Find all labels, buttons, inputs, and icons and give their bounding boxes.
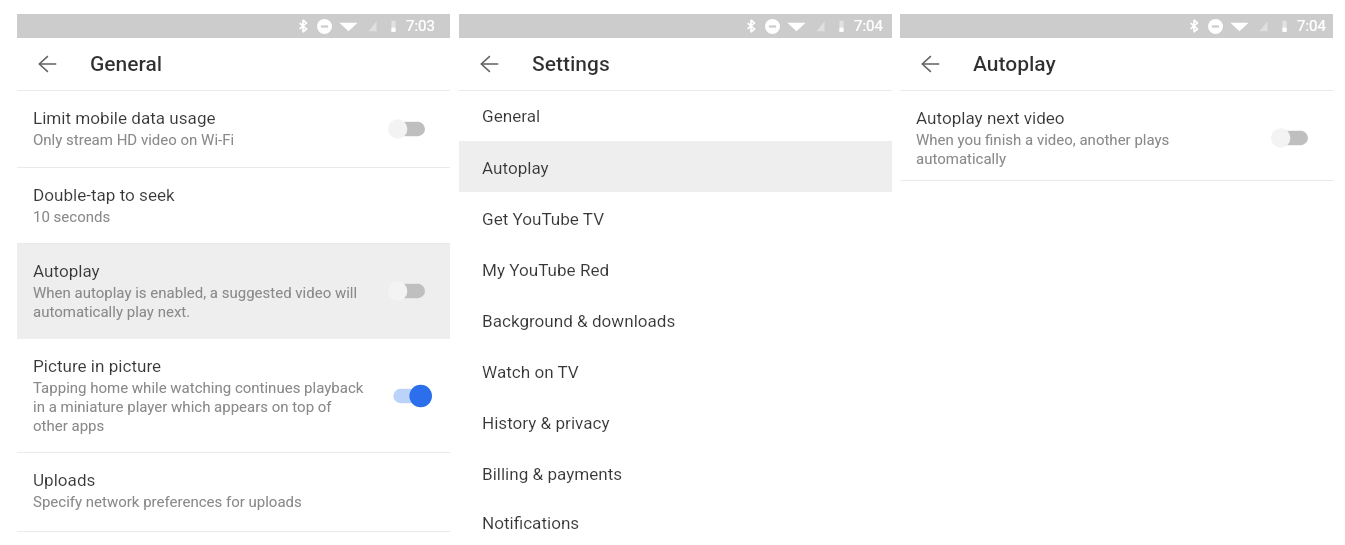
- staticText: Watch on TV: [482, 362, 579, 382]
- button[interactable]: Watch on TV: [459, 345, 892, 396]
- staticText: Autoplay next video: [916, 108, 1065, 128]
- button[interactable]: Billing & payments: [459, 447, 892, 498]
- staticText: Specify network preferences for uploads: [33, 493, 302, 511]
- staticText: Autoplay: [482, 158, 549, 178]
- button[interactable]: Back: [30, 47, 64, 81]
- button[interactable]: Back: [913, 47, 947, 81]
- staticText: Autoplay: [33, 261, 100, 281]
- button[interactable]: Background & downloads: [459, 294, 892, 345]
- staticText: 10 seconds: [33, 208, 111, 226]
- button[interactable]: Autoplay: [459, 141, 892, 192]
- staticText: Only stream HD video on Wi-Fi: [33, 131, 235, 149]
- button[interactable]: Get YouTube TV: [459, 192, 892, 243]
- button[interactable]: Picture in picture: [17, 339, 450, 452]
- staticText: Limit mobile data usage: [33, 108, 216, 128]
- staticText: When you finish a video, another plays a…: [916, 131, 1170, 168]
- button[interactable]: Toggle off: [380, 274, 432, 308]
- staticText: Get YouTube TV: [482, 209, 605, 229]
- staticText: Notifications: [482, 513, 580, 533]
- staticText: Billing & payments: [482, 464, 623, 484]
- staticText: General: [90, 52, 163, 77]
- button[interactable]: Notifications: [459, 498, 892, 545]
- button[interactable]: Limit mobile data usage: [17, 91, 450, 167]
- button[interactable]: Autoplay next video: [900, 91, 1333, 180]
- staticText: Autoplay: [973, 52, 1056, 77]
- staticText: Tapping home while watching continues pl…: [33, 379, 364, 435]
- staticText: My YouTube Red: [482, 260, 610, 280]
- staticText: 7:03: [406, 17, 435, 35]
- staticText: Background & downloads: [482, 311, 676, 331]
- button[interactable]: Uploads: [17, 453, 450, 531]
- staticText: Settings: [532, 52, 610, 77]
- button[interactable]: My YouTube Red: [459, 243, 892, 294]
- button[interactable]: Autoplay: [17, 244, 450, 339]
- button[interactable]: Toggle off: [1263, 121, 1315, 155]
- button[interactable]: Back: [472, 47, 506, 81]
- staticText: Double-tap to seek: [33, 185, 175, 205]
- button[interactable]: History & privacy: [459, 396, 892, 447]
- button[interactable]: Toggle on: [380, 379, 432, 413]
- staticText: Uploads: [33, 470, 96, 490]
- button[interactable]: Double-tap to seek: [17, 168, 450, 243]
- staticText: 7:04: [1297, 17, 1326, 35]
- staticText: When autoplay is enabled, a suggested vi…: [33, 284, 358, 321]
- button[interactable]: Toggle off: [380, 112, 432, 146]
- staticText: 7:04: [854, 17, 883, 35]
- staticText: History & privacy: [482, 413, 610, 433]
- staticText: Picture in picture: [33, 356, 162, 376]
- staticText: General: [482, 106, 541, 126]
- button[interactable]: General: [459, 91, 892, 141]
